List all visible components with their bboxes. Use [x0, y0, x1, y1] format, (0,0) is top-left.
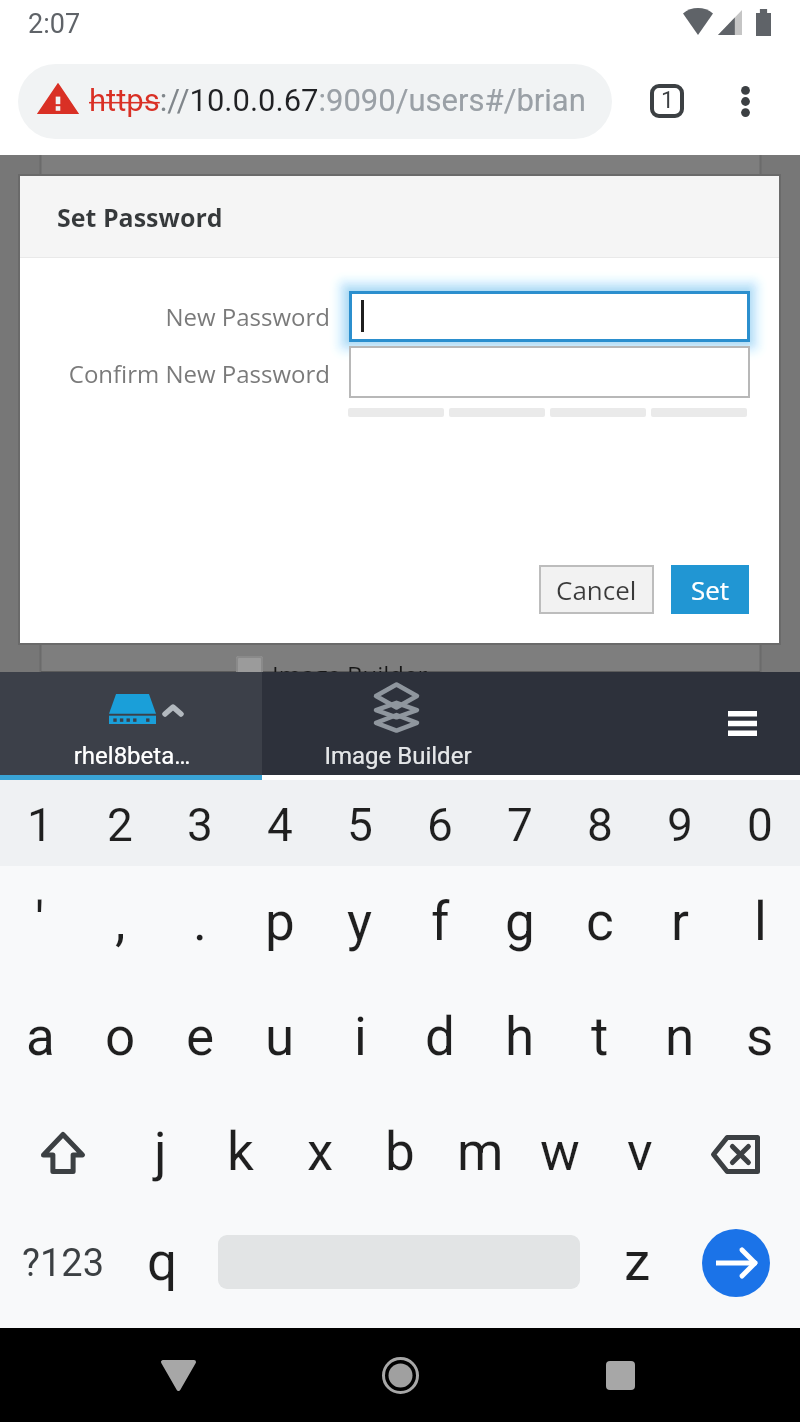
button[interactable]: h	[480, 981, 560, 1096]
staticText: Cancel	[556, 572, 637, 607]
button[interactable]: c	[560, 866, 640, 981]
button[interactable]: 7	[480, 780, 560, 866]
staticText: r	[671, 891, 689, 953]
staticText: v	[627, 1121, 653, 1183]
button[interactable]: n	[640, 981, 720, 1096]
staticText: Image Builder	[263, 742, 533, 770]
staticText: m	[457, 1121, 504, 1183]
staticText: o	[105, 1006, 136, 1068]
button[interactable]: Set	[671, 565, 749, 614]
staticText: .	[193, 891, 207, 953]
button[interactable]: s	[720, 981, 800, 1096]
staticText: 9	[667, 798, 693, 852]
button[interactable]: 5	[320, 780, 400, 866]
button[interactable]: 9	[640, 780, 720, 866]
button[interactable]: i	[320, 981, 400, 1096]
button[interactable]: Menu	[702, 687, 782, 759]
staticText: 2	[107, 798, 133, 852]
button[interactable]: y	[320, 866, 400, 981]
button[interactable]: 8	[560, 780, 640, 866]
button[interactable]: d	[400, 981, 480, 1096]
button[interactable]: ,	[80, 866, 160, 981]
staticText: l	[754, 891, 767, 953]
button[interactable]: 4	[240, 780, 320, 866]
button[interactable]: Recent apps	[580, 1340, 660, 1410]
staticText: Image Builder	[272, 658, 428, 691]
button[interactable]: t	[560, 981, 640, 1096]
button[interactable]: g	[480, 866, 560, 981]
staticText: ?123	[22, 1241, 105, 1286]
button[interactable]: ?123	[0, 1211, 120, 1328]
staticText: y	[347, 891, 373, 953]
staticText: p	[265, 891, 295, 953]
button[interactable]: https://10.0.0.67:9090/users#/brian	[18, 64, 612, 139]
button[interactable]: q	[122, 1211, 202, 1328]
staticText: i	[354, 1006, 367, 1068]
button[interactable]: 0	[720, 780, 800, 866]
button[interactable]: r	[640, 866, 720, 981]
staticText: e	[186, 1006, 215, 1068]
button[interactable]: .	[160, 866, 240, 981]
button[interactable]: p	[240, 866, 320, 981]
button[interactable]: rhel8beta…	[0, 672, 262, 775]
staticText: c	[586, 891, 614, 953]
staticText: 8	[587, 798, 613, 852]
button[interactable]: 1	[0, 780, 80, 866]
staticText: 2:07	[28, 8, 81, 40]
button[interactable]: j	[120, 1096, 200, 1211]
staticText: 5	[347, 798, 373, 852]
button[interactable]	[349, 346, 750, 398]
button[interactable]: Backspace	[680, 1096, 800, 1211]
button[interactable]	[349, 291, 750, 342]
button[interactable]: o	[80, 981, 160, 1096]
staticText: d	[425, 1006, 455, 1068]
staticText: q	[147, 1231, 178, 1293]
button[interactable]: Enter	[702, 1229, 770, 1297]
staticText: h	[505, 1006, 535, 1068]
staticText: x	[307, 1121, 334, 1183]
staticText: t	[591, 1006, 609, 1068]
button[interactable]: 3	[160, 780, 240, 866]
button[interactable]: More options	[720, 75, 772, 127]
button[interactable]: '	[0, 866, 80, 981]
button[interactable]: f	[400, 866, 480, 981]
button[interactable]: u	[240, 981, 320, 1096]
button[interactable]: Home	[360, 1340, 440, 1410]
button[interactable]: a	[0, 981, 80, 1096]
staticText: b	[385, 1121, 415, 1183]
button[interactable]: Image Builder	[262, 672, 532, 775]
button[interactable]: b	[360, 1096, 440, 1211]
button[interactable]: 6	[400, 780, 480, 866]
button[interactable]: l	[720, 866, 800, 981]
button[interactable]: w	[520, 1096, 600, 1211]
staticText: rhel8beta…	[1, 742, 263, 770]
button[interactable]: e	[160, 981, 240, 1096]
button[interactable]: Back	[138, 1340, 218, 1410]
staticText: 1	[27, 798, 53, 852]
button[interactable]: Tabs	[641, 75, 693, 127]
button[interactable]: k	[200, 1096, 280, 1211]
staticText: k	[227, 1121, 254, 1183]
staticText: s	[746, 1006, 774, 1068]
staticText: '	[35, 891, 45, 953]
staticText: 6	[427, 798, 453, 852]
button[interactable]: Shift	[0, 1096, 120, 1211]
staticText: 0	[747, 798, 773, 852]
button[interactable]: x	[280, 1096, 360, 1211]
staticText: 7	[507, 798, 533, 852]
staticText: 4	[267, 798, 293, 852]
staticText: j	[154, 1121, 167, 1183]
button[interactable]: 2	[80, 780, 160, 866]
staticText: 1	[661, 87, 674, 114]
staticText: a	[26, 1006, 55, 1068]
staticText: f	[431, 891, 450, 953]
staticText: u	[265, 1006, 295, 1068]
button[interactable]: v	[600, 1096, 680, 1211]
staticText: ,	[115, 891, 126, 953]
button[interactable]: m	[440, 1096, 520, 1211]
staticText: g	[505, 891, 535, 953]
staticText: z	[624, 1231, 651, 1293]
button[interactable]: Cancel	[539, 565, 654, 614]
button[interactable]: z	[597, 1211, 677, 1328]
